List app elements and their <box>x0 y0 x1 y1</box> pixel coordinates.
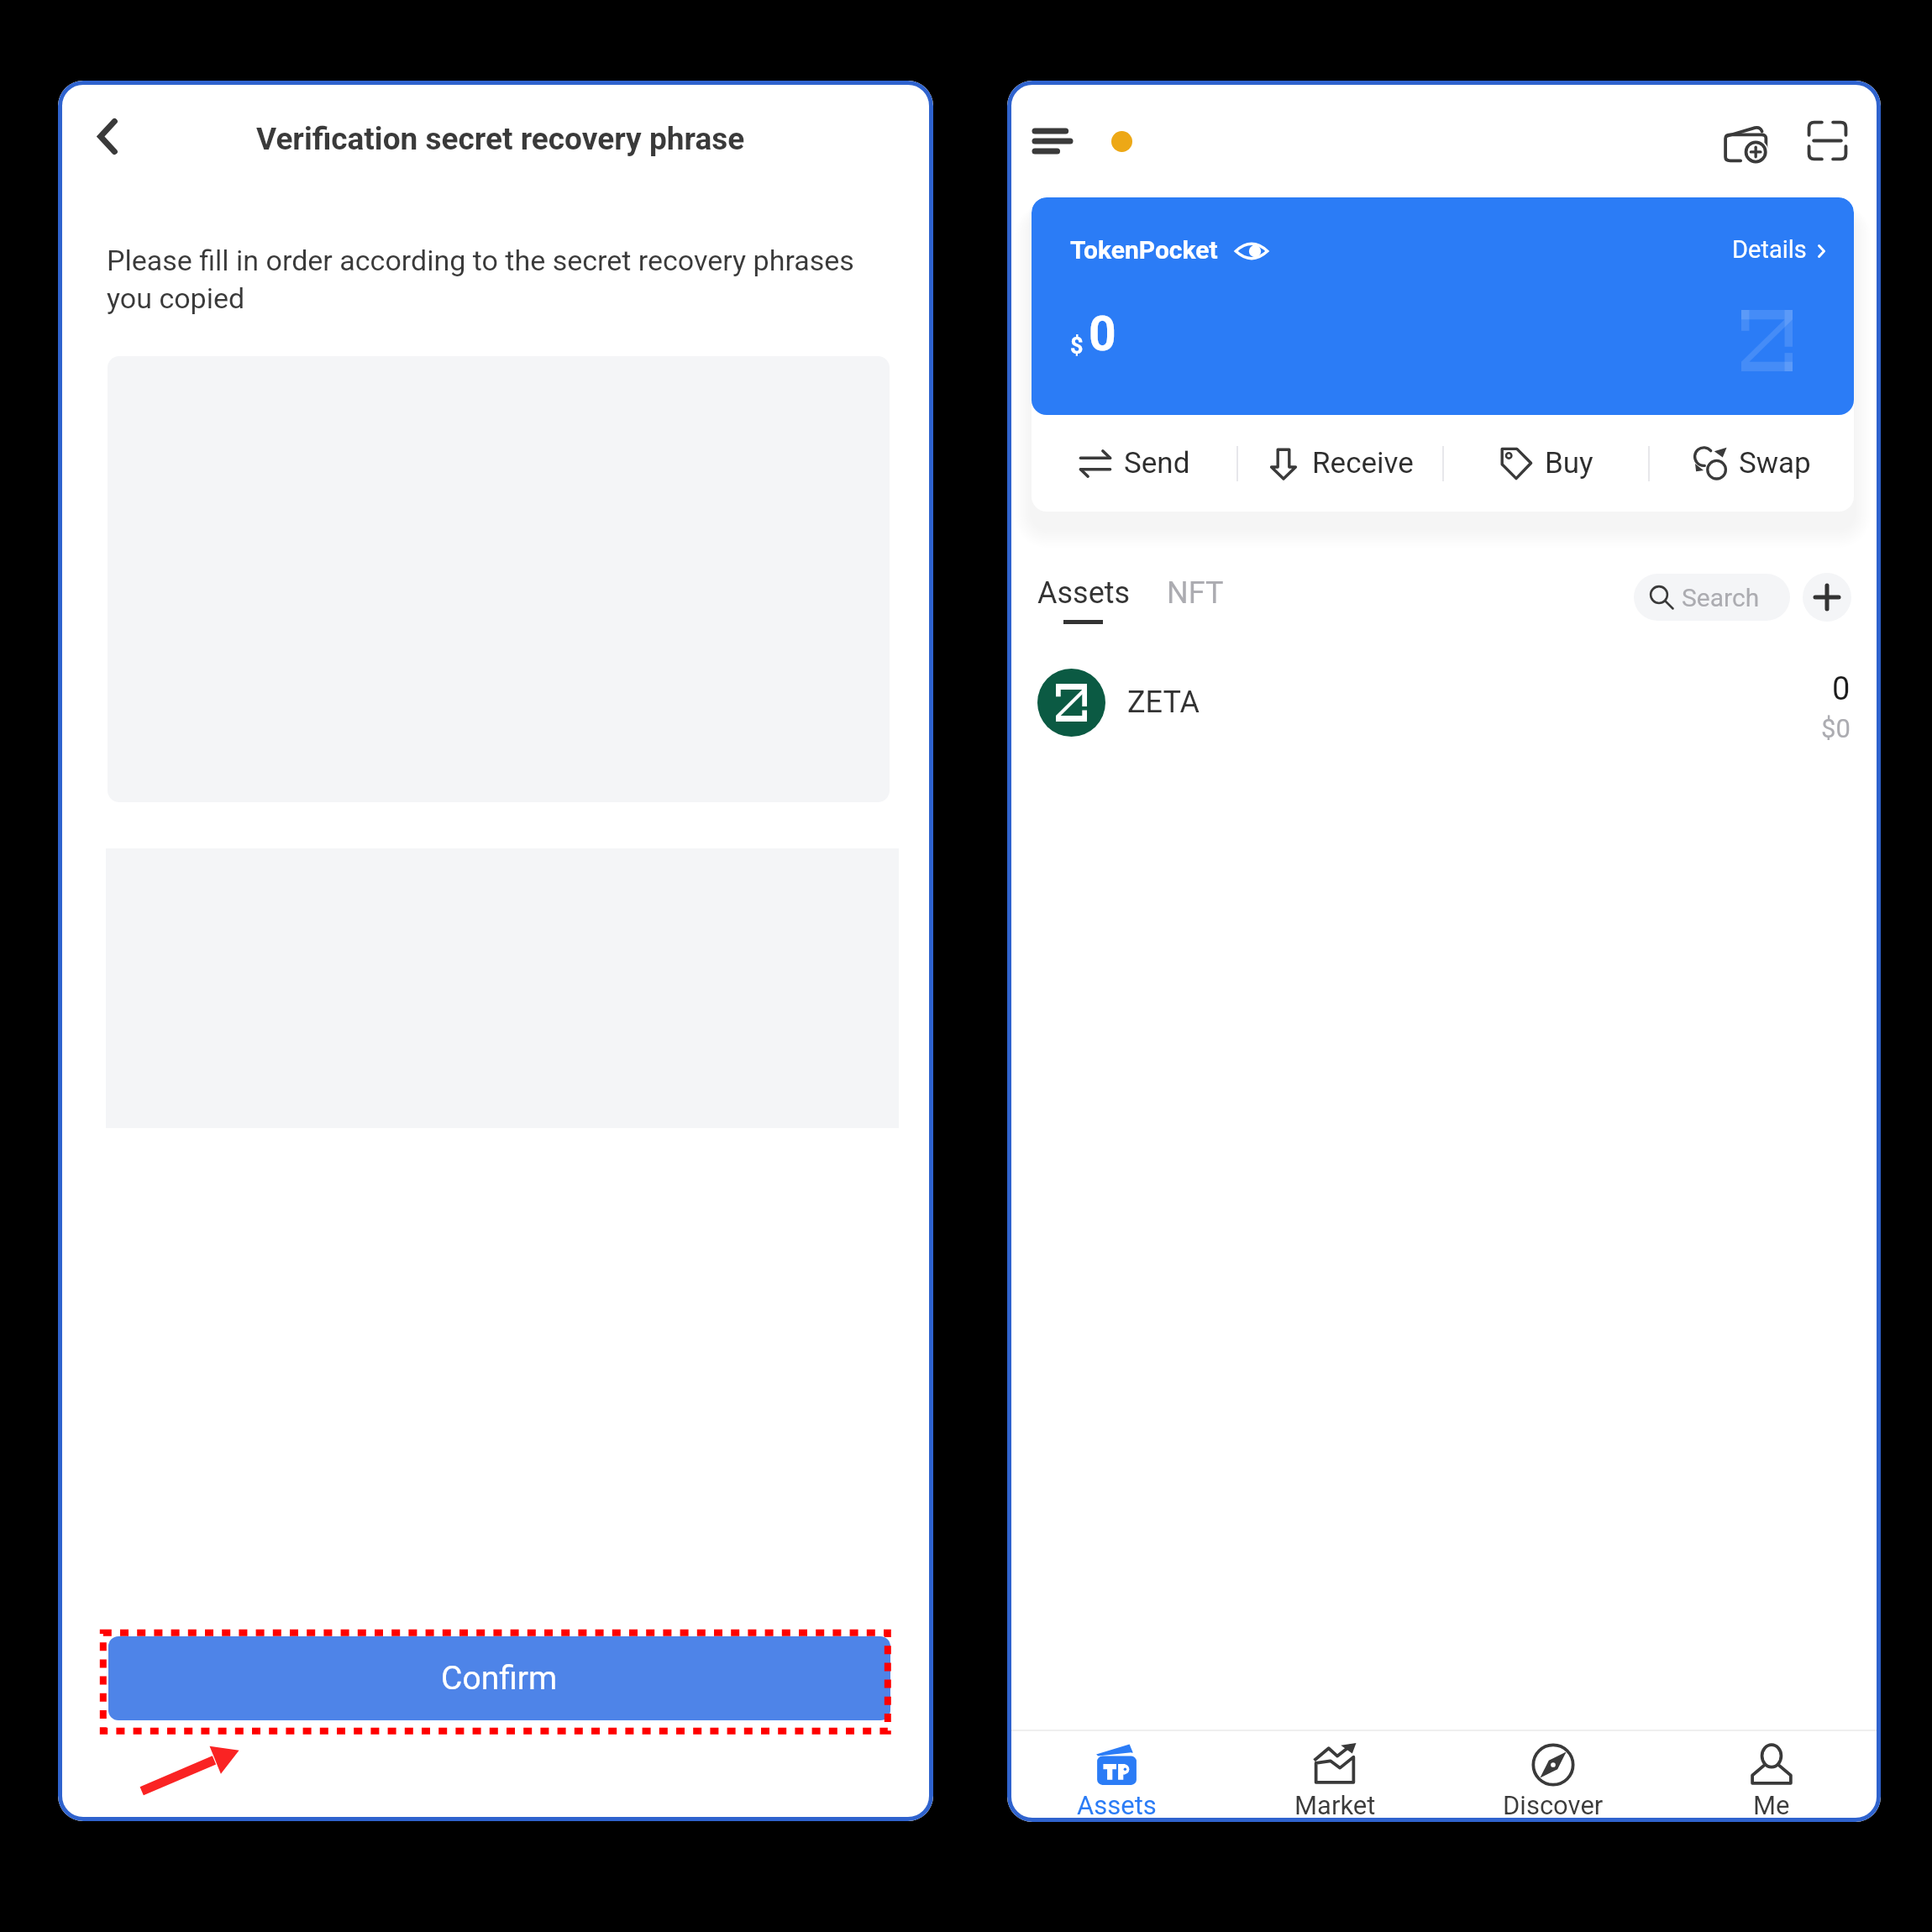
staticText: Assets <box>1077 1790 1157 1820</box>
button[interactable]: Buy <box>1444 415 1648 512</box>
staticText: Search <box>1682 583 1760 612</box>
staticText: $ <box>1070 333 1084 360</box>
staticText: $0 <box>1821 713 1851 743</box>
button[interactable]: Me <box>1662 1743 1881 1820</box>
button[interactable]: Add token <box>1803 573 1851 622</box>
button[interactable]: Send <box>1032 415 1236 512</box>
staticText: ZETA <box>1127 685 1200 720</box>
button[interactable]: ZETA <box>1037 652 1851 753</box>
button[interactable]: Assets <box>1037 575 1131 611</box>
staticText: Please fill in order according to the se… <box>107 244 878 316</box>
button[interactable]: Assets <box>1007 1743 1226 1820</box>
staticText: Confirm <box>441 1659 558 1698</box>
button[interactable]: Swap <box>1650 415 1854 512</box>
button[interactable]: Menu <box>1026 114 1079 168</box>
staticText: TokenPocket <box>1070 235 1218 265</box>
staticText: 0 <box>1089 306 1116 362</box>
staticText: Verification secret recovery phrase <box>256 121 745 157</box>
staticText: Receive <box>1312 446 1414 480</box>
staticText: Assets <box>1037 575 1131 611</box>
button[interactable]: Details <box>1727 226 1831 271</box>
button[interactable]: Back <box>75 103 140 169</box>
staticText: Me <box>1753 1790 1790 1820</box>
staticText: NFT <box>1167 575 1224 611</box>
button[interactable]: Add wallet <box>1713 111 1778 176</box>
button[interactable]: Search <box>1634 574 1790 621</box>
button[interactable]: Market <box>1226 1743 1444 1820</box>
staticText: Details <box>1732 235 1807 264</box>
button[interactable]: Discover <box>1444 1743 1662 1820</box>
staticText: Swap <box>1739 446 1811 480</box>
button[interactable]: Receive <box>1238 415 1442 512</box>
staticText: Discover <box>1503 1790 1604 1820</box>
staticText: Buy <box>1545 446 1593 480</box>
button[interactable]: TokenPocket <box>1032 197 1854 415</box>
button[interactable]: Hide balance <box>1225 229 1278 273</box>
button[interactable]: Confirm <box>108 1636 890 1720</box>
button[interactable]: NFT <box>1167 575 1224 611</box>
staticText: Market <box>1294 1790 1376 1820</box>
staticText: 0 <box>1832 670 1851 708</box>
staticText: Send <box>1124 446 1190 480</box>
button[interactable]: Scan <box>1794 108 1860 173</box>
